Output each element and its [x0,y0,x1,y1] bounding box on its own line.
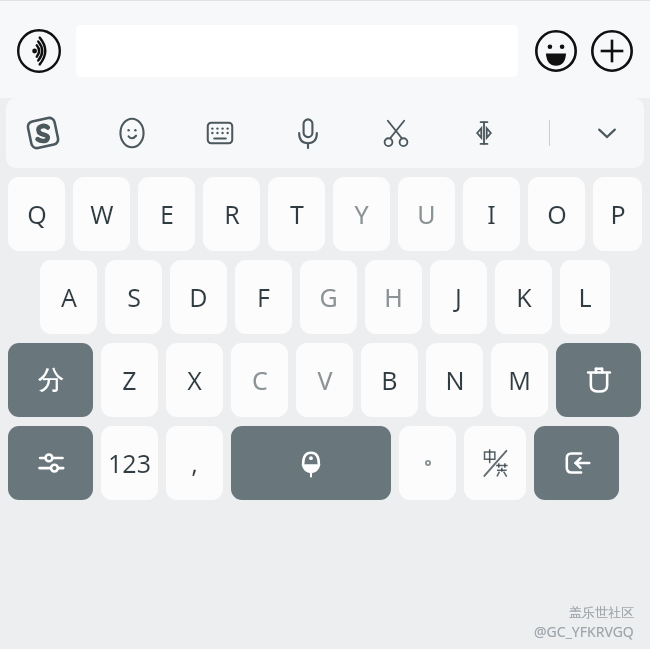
button[interactable]: Sogou input [20,110,66,156]
staticText: K [516,280,532,314]
button[interactable]: V [296,343,353,417]
staticText: H [384,280,403,314]
button[interactable]: Enter [534,426,619,500]
staticText: N [445,363,465,397]
staticText: 盖乐世社区 [569,604,634,620]
staticText: 分 [38,364,64,397]
staticText: D [189,280,208,314]
button[interactable]: Y [333,177,390,251]
staticText: I [487,197,496,231]
staticText: @GC_YFKRVGQ [534,622,634,641]
staticText: P [610,197,626,231]
button[interactable]: Separate syllables [8,343,93,417]
button[interactable]: Delete [556,343,641,417]
button[interactable]: A [40,260,97,334]
button[interactable]: Voice [285,110,331,156]
staticText: X [187,363,202,397]
button[interactable]: R [203,177,260,251]
button[interactable]: N [426,343,483,417]
button[interactable]: Settings [8,426,93,500]
button[interactable]: Collapse [584,110,630,156]
staticText: Y [354,197,369,231]
button[interactable]: X [166,343,223,417]
button[interactable]: H [365,260,422,334]
button[interactable]: Voice input [14,26,64,76]
staticText: Q [27,197,47,231]
button[interactable]: G [300,260,357,334]
staticText: Z [122,363,137,397]
staticText: L [578,280,592,314]
button[interactable]: E [138,177,195,251]
button[interactable]: Add [588,27,636,75]
button[interactable]: , [166,426,223,500]
button[interactable]: Move cursor [461,110,507,156]
button[interactable]: Q [8,177,65,251]
button[interactable]: Keyboard layout [197,110,243,156]
staticText: V [317,363,333,397]
staticText: C [252,363,268,397]
button[interactable]: B [361,343,418,417]
staticText: O [547,197,567,231]
staticText: U [417,197,436,231]
staticText: F [257,280,270,314]
staticText: B [381,363,398,397]
staticText: A [61,280,77,314]
staticText: R [224,197,240,231]
staticText: M [508,363,531,397]
button[interactable]: M [491,343,548,417]
button[interactable]: T [268,177,325,251]
button[interactable]: F [235,260,292,334]
button[interactable]: O [528,177,585,251]
button[interactable]: D [170,260,227,334]
button[interactable]: Space [231,426,391,500]
button[interactable]: Emoji [109,110,155,156]
staticText: W [90,197,114,231]
button[interactable]: Clipboard cut [373,110,419,156]
staticText: 123 [108,446,151,480]
staticText: S [127,280,141,314]
staticText: E [160,197,174,231]
button[interactable]: C [231,343,288,417]
button[interactable]: K [495,260,552,334]
button[interactable]: W [73,177,130,251]
button[interactable]: Z [101,343,158,417]
button[interactable]: L [560,260,610,334]
button[interactable]: U [398,177,455,251]
button[interactable]: J [430,260,487,334]
button[interactable]: Switch Chinese English [464,426,526,500]
button[interactable]: S [105,260,162,334]
staticText: , [191,446,198,480]
staticText: G [319,280,338,314]
button[interactable]: Period [399,426,456,500]
button[interactable]: I [463,177,520,251]
button[interactable]: Emoji [532,27,580,75]
staticText: T [290,197,304,231]
button[interactable]: P [593,177,642,251]
button[interactable]: 123 [101,426,158,500]
staticText: J [455,280,462,314]
